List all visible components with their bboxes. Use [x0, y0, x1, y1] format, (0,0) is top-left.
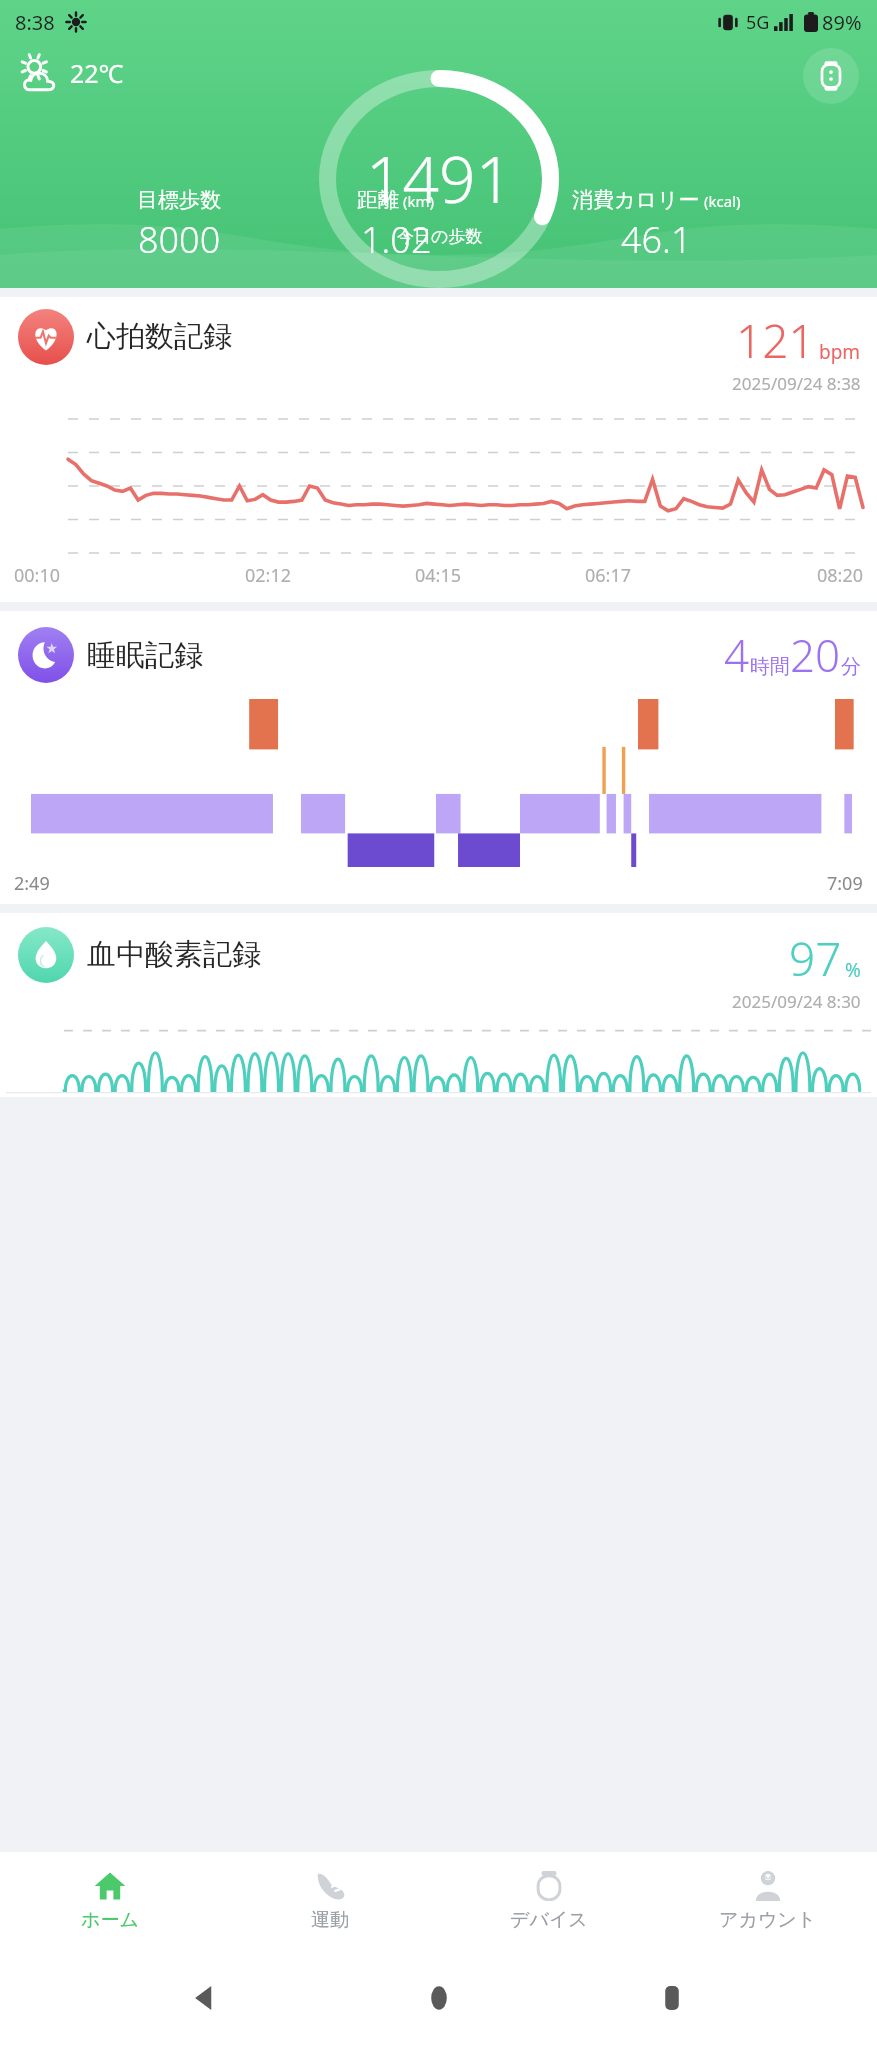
- staticText: 04:15: [353, 563, 523, 588]
- staticText: 時間: [750, 654, 790, 679]
- staticText: 89%: [822, 9, 862, 36]
- button[interactable]: 睡眠記録: [0, 611, 877, 904]
- staticText: 8:38: [15, 9, 55, 36]
- staticText: 22℃: [70, 56, 124, 90]
- button[interactable]: 心拍数記録: [0, 297, 877, 602]
- button[interactable]: 22℃: [14, 47, 128, 99]
- button[interactable]: 距離: [357, 187, 435, 264]
- staticText: 1.02: [361, 215, 432, 264]
- staticText: ホーム: [81, 1908, 139, 1932]
- button[interactable]: My device: [803, 48, 859, 104]
- staticText: 血中酸素記録: [87, 936, 261, 973]
- staticText: デバイス: [510, 1908, 588, 1932]
- staticText: アカウント: [719, 1908, 817, 1932]
- staticText: 睡眠記録: [87, 637, 203, 674]
- button[interactable]: 目標歩数: [137, 187, 221, 264]
- staticText: 5G: [746, 10, 770, 35]
- staticText: 今日の歩数: [397, 226, 483, 247]
- staticText: 運動: [311, 1908, 349, 1932]
- button[interactable]: 運動: [220, 1852, 439, 1948]
- staticText: 06:17: [523, 563, 693, 588]
- staticText: 4: [724, 625, 750, 685]
- staticText: 08:20: [693, 563, 863, 588]
- staticText: 距離: [357, 187, 399, 213]
- button[interactable]: アカウント: [658, 1852, 877, 1948]
- staticText: 2025/09/24 8:38: [732, 372, 861, 395]
- button[interactable]: 消費カロリー: [572, 187, 741, 264]
- staticText: 2:49: [14, 871, 50, 896]
- button[interactable]: デバイス: [439, 1852, 658, 1948]
- staticText: 2025/09/24 8:30: [732, 990, 861, 1013]
- staticText: %: [845, 957, 861, 983]
- staticText: 分: [841, 654, 861, 679]
- button[interactable]: 1491: [319, 70, 559, 288]
- staticText: 97: [789, 927, 842, 990]
- staticText: 46.1: [621, 215, 692, 264]
- staticText: 消費カロリー: [572, 187, 700, 213]
- staticText: 121: [736, 309, 815, 372]
- staticText: 7:09: [827, 871, 863, 896]
- staticText: bpm: [819, 339, 861, 365]
- staticText: 心拍数記録: [87, 318, 232, 355]
- staticText: (kcal): [704, 191, 741, 211]
- staticText: 00:10: [14, 563, 183, 588]
- button[interactable]: 血中酸素記録: [0, 913, 877, 1097]
- staticText: (km): [403, 191, 435, 211]
- staticText: 1491: [366, 135, 513, 222]
- staticText: 8000: [138, 215, 221, 264]
- staticText: 目標歩数: [137, 187, 221, 213]
- staticText: 02:12: [183, 563, 353, 588]
- button[interactable]: ホーム: [0, 1852, 220, 1948]
- staticText: 20: [790, 625, 841, 685]
- button[interactable]: Home: [411, 1970, 467, 2026]
- button[interactable]: Back: [177, 1970, 233, 2026]
- button[interactable]: Recents: [644, 1970, 700, 2026]
